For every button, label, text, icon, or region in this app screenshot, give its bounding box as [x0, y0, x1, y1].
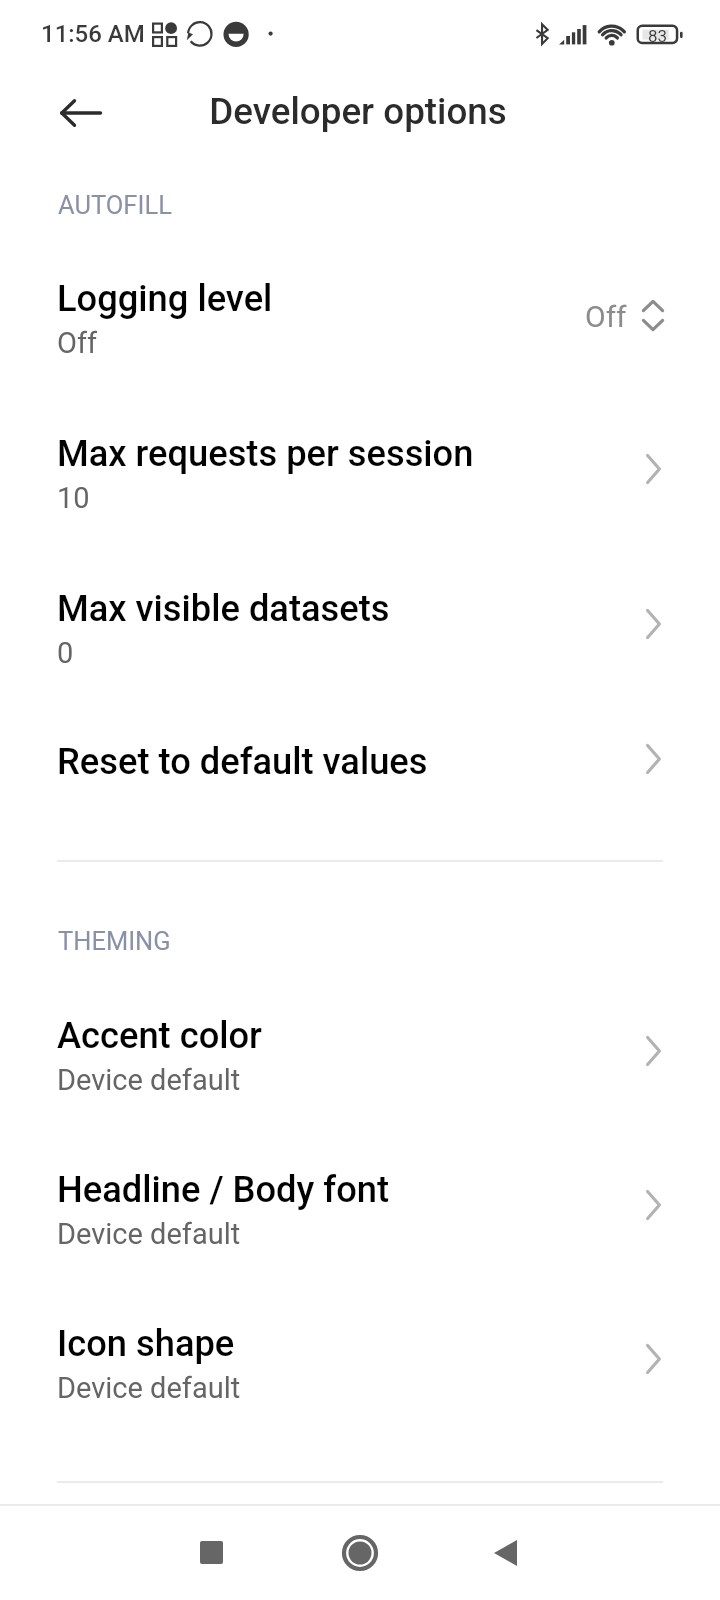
staticText: Icon shape: [57, 1322, 235, 1365]
staticText: Off: [585, 299, 627, 334]
button[interactable]: Navigate up: [44, 76, 117, 149]
staticText: Accent color: [57, 1014, 262, 1057]
button[interactable]: Home: [321, 1514, 399, 1592]
button[interactable]: Accent color: [0, 965, 720, 1117]
button[interactable]: Max visible datasets: [0, 538, 720, 690]
staticText: Headline / Body font: [57, 1168, 390, 1211]
staticText: 83: [648, 26, 668, 46]
staticText: Reset to default values: [57, 740, 428, 783]
staticText: THEMING: [58, 926, 171, 956]
button[interactable]: Change Logging level: [580, 281, 646, 337]
button[interactable]: Reset to default values: [0, 691, 720, 843]
button[interactable]: Back: [467, 1514, 545, 1592]
staticText: 11:56 AM: [41, 20, 145, 48]
button[interactable]: Logging level: [0, 228, 720, 380]
staticText: Max requests per session: [57, 432, 474, 475]
staticText: Max visible datasets: [57, 587, 390, 630]
staticText: Logging level: [57, 277, 273, 320]
staticText: Device default: [57, 1063, 241, 1097]
staticText: 10: [57, 481, 90, 515]
staticText: Off: [57, 326, 98, 360]
staticText: Device default: [57, 1371, 241, 1405]
button[interactable]: Headline / Body font: [0, 1119, 720, 1271]
staticText: Device default: [57, 1217, 241, 1251]
button[interactable]: Max requests per session: [0, 383, 720, 535]
button[interactable]: Icon shape: [0, 1273, 720, 1425]
button[interactable]: Recent apps: [172, 1513, 250, 1591]
staticText: AUTOFILL: [58, 190, 172, 220]
staticText: 0: [57, 636, 74, 670]
staticText: Developer options: [209, 90, 507, 133]
